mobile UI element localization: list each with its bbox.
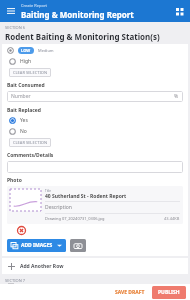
button[interactable]: Title	[7, 186, 183, 224]
staticText: Rodent Baiting & Monitoring Station(s)	[5, 31, 160, 42]
button[interactable]	[7, 161, 183, 173]
staticText: Bait Replaced	[7, 107, 41, 114]
button[interactable]: CLEAR SELECTION	[9, 68, 51, 77]
staticText: LOW	[21, 48, 31, 53]
button[interactable]: High	[7, 56, 183, 67]
staticText: Medium	[38, 48, 54, 53]
staticText: CLEAR SELECTION	[13, 140, 47, 145]
staticText: SECTION 6	[5, 25, 26, 30]
staticText: %	[174, 93, 179, 100]
staticText: SECTION 7	[5, 278, 26, 283]
button[interactable]: ADD IMAGES	[7, 239, 66, 252]
staticText: SAVE DRAFT	[115, 289, 145, 296]
staticText: Number	[11, 93, 31, 100]
button[interactable]: Add Another Row	[2, 258, 188, 274]
button[interactable]: Options	[173, 5, 185, 17]
staticText: Baiting & Monitoring Report	[21, 9, 134, 20]
button[interactable]: PUBLISH	[152, 286, 186, 299]
button[interactable]: SAVE DRAFT	[111, 287, 149, 298]
staticText: 43.44KB	[164, 216, 180, 221]
staticText: Comments/Details	[7, 152, 54, 159]
staticText: PUBLISH	[158, 289, 180, 296]
button[interactable]: Yes	[7, 115, 183, 126]
staticText: ADD IMAGES	[21, 242, 53, 249]
button[interactable]: No	[7, 126, 183, 137]
staticText: Title	[45, 189, 51, 193]
staticText: Create Report	[21, 3, 48, 8]
staticText: Add Another Row	[20, 263, 64, 270]
staticText: High	[20, 58, 32, 65]
button[interactable]: LOW	[18, 47, 34, 54]
staticText: Description	[45, 204, 72, 211]
staticText: Yes	[20, 117, 28, 124]
staticText: CLEAR SELECTION	[13, 70, 47, 75]
staticText: No	[20, 128, 27, 135]
button[interactable]: Number	[7, 91, 183, 102]
button[interactable]: CLEAR SELECTION	[9, 138, 51, 147]
staticText: Bait Consumed	[7, 82, 45, 89]
button[interactable]: Remove photo	[17, 226, 26, 235]
button[interactable]: Menu	[5, 5, 17, 17]
button[interactable]: Take photo	[70, 239, 86, 252]
staticText: 40 Sutherland St - Rodent Report	[45, 193, 127, 200]
staticText: Photo	[7, 177, 22, 184]
staticText: Drawing 07_20240731_0306.jpg	[45, 216, 164, 221]
